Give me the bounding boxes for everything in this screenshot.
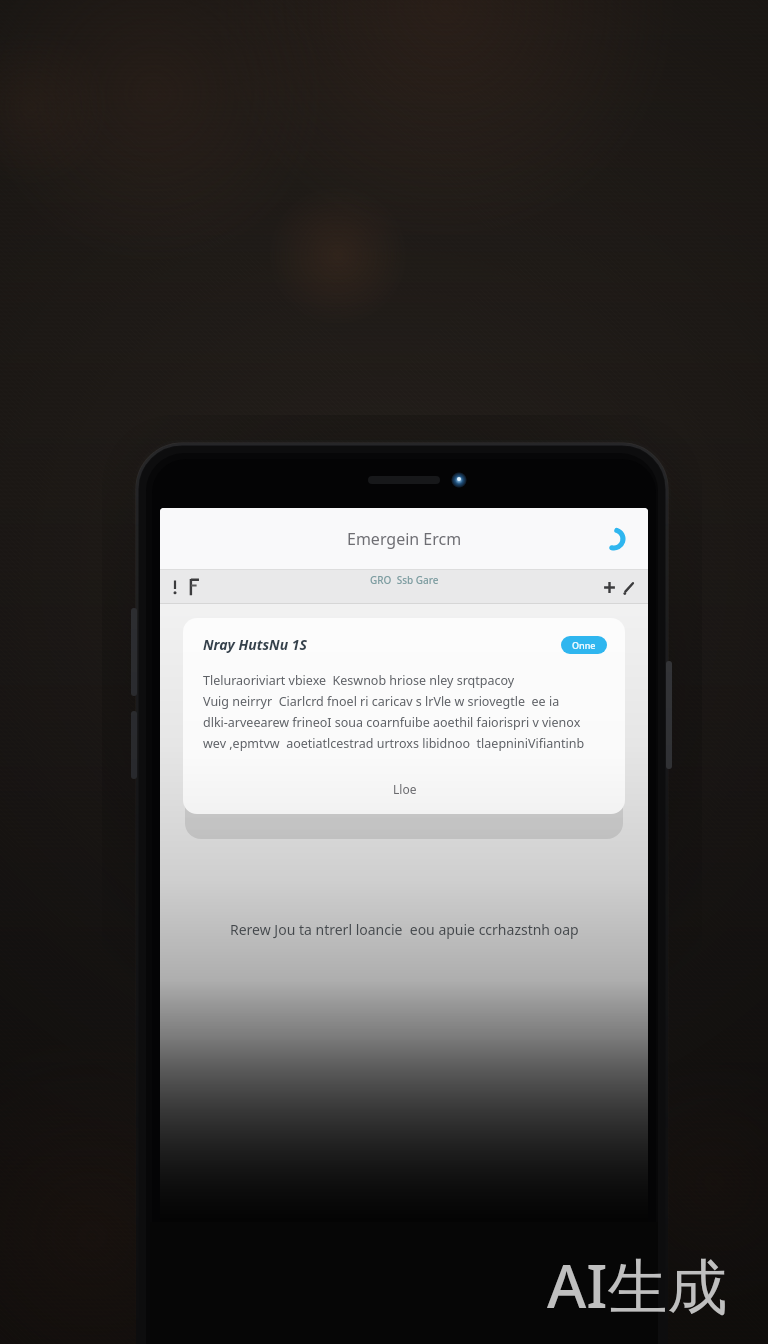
button[interactable]: GRO Ssb Gare (362, 570, 447, 590)
button[interactable]: Nray HutsNu 1S (183, 618, 625, 814)
button[interactable]: Alerts (166, 574, 204, 600)
staticText: AI生成 (547, 1244, 728, 1326)
staticText: wev ,epmtvw aoetiatlcestrad urtroxs libi… (203, 735, 585, 752)
button[interactable]: Refresh (592, 517, 636, 561)
staticText: Onne (572, 639, 596, 651)
staticText: Tleluraoriviart vbiexe Keswnob hriose nl… (203, 672, 515, 689)
button[interactable]: Onne (561, 636, 607, 654)
button[interactable]: Add and edit (598, 576, 640, 599)
staticText: GRO Ssb Gare (370, 573, 439, 587)
staticText: Nray HutsNu 1S (203, 635, 307, 654)
staticText: Rerew Jou ta ntrerl loancie eou apuie cc… (230, 920, 579, 939)
staticText: Emergein Ercm (347, 528, 462, 550)
staticText: dlki-arveearew frineoI soua coarnfuibe a… (203, 714, 581, 731)
staticText: Lloe (393, 781, 417, 797)
button[interactable]: Lloe (379, 778, 431, 800)
staticText: Vuig neirryr Ciarlcrd fnoel ri caricav s… (203, 693, 560, 710)
